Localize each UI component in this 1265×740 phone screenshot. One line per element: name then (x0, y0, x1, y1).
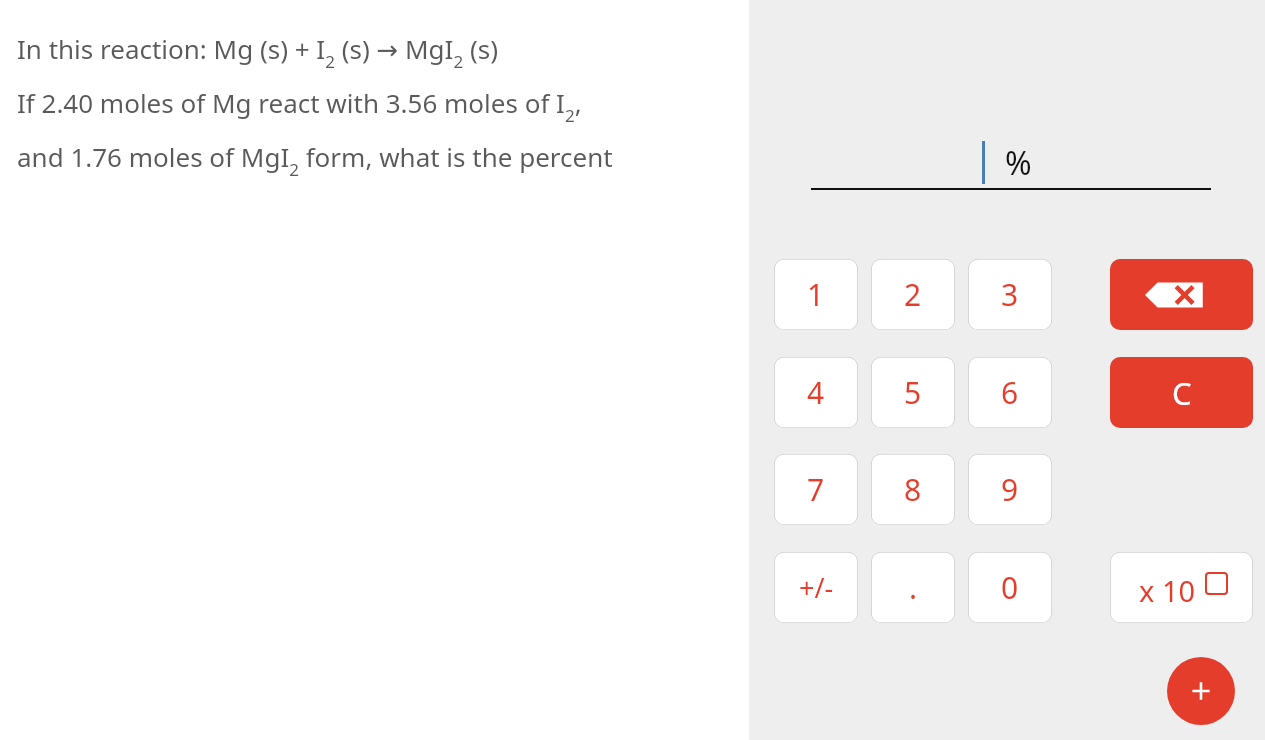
button[interactable]: 3 (968, 259, 1052, 330)
staticText: C (1172, 372, 1192, 414)
staticText: In this reaction: Mg (s) + I2 (s) → MgI2… (17, 31, 613, 191)
button[interactable]: 8 (871, 454, 955, 525)
button[interactable]: Backspace (1110, 259, 1253, 330)
staticText: 0 (1001, 567, 1019, 608)
button[interactable]: Clear (1110, 357, 1253, 428)
button[interactable]: 7 (774, 454, 858, 525)
button[interactable]: +/- (774, 552, 858, 623)
staticText: 5 (904, 372, 922, 413)
staticText: +/- (799, 569, 834, 606)
staticText: 4 (807, 372, 825, 413)
staticText: 2 (904, 274, 922, 315)
button[interactable]: . (871, 552, 955, 623)
staticText: % (1005, 141, 1032, 185)
staticText: 1 (807, 274, 825, 315)
button[interactable]: 5 (871, 357, 955, 428)
button[interactable]: 0 (968, 552, 1052, 623)
staticText: 3 (1001, 274, 1019, 315)
staticText: 9 (1001, 469, 1019, 510)
button[interactable]: 9 (968, 454, 1052, 525)
staticText: . (909, 567, 918, 608)
button[interactable]: 4 (774, 357, 858, 428)
button[interactable]: times ten to the power (1110, 552, 1253, 623)
staticText: 8 (904, 469, 922, 510)
button[interactable]: Add (1167, 657, 1235, 725)
staticText: 7 (807, 469, 825, 510)
staticText: 6 (1001, 372, 1019, 413)
button[interactable]: 1 (774, 259, 858, 330)
button[interactable]: 2 (871, 259, 955, 330)
button[interactable]: 6 (968, 357, 1052, 428)
staticText: x 10 (1139, 571, 1196, 610)
